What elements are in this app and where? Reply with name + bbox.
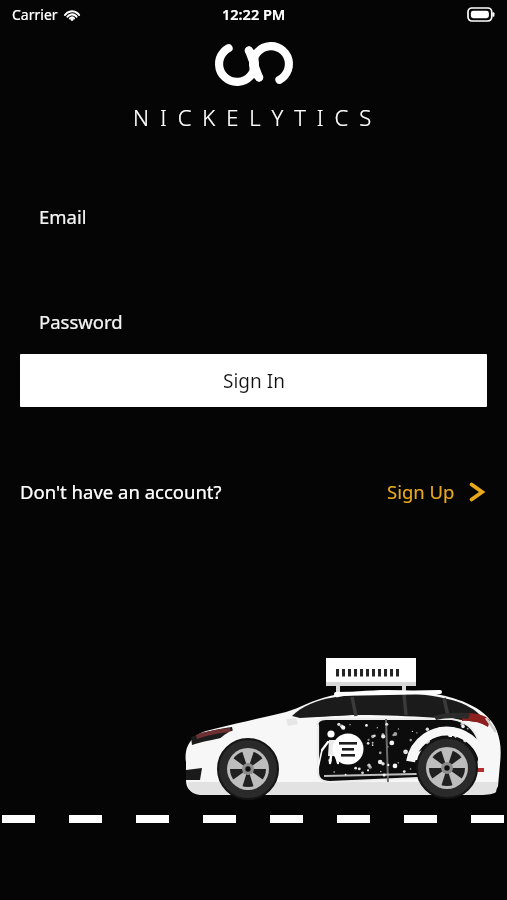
button[interactable]: Sign Up [379, 475, 487, 508]
staticText: Don't have an account? [20, 479, 222, 504]
staticText: Password [39, 309, 123, 334]
button[interactable]: Password [0, 295, 507, 347]
staticText: N I C K E L Y T I C S [133, 102, 374, 132]
staticText: Sign Up [387, 479, 455, 504]
staticText: 12:22 PM [222, 4, 286, 24]
staticText: Email [39, 204, 87, 229]
staticText: Sign In [223, 368, 285, 394]
button[interactable]: Sign In [20, 354, 487, 407]
button[interactable]: Email [0, 190, 507, 242]
staticText: Carrier [12, 5, 58, 24]
